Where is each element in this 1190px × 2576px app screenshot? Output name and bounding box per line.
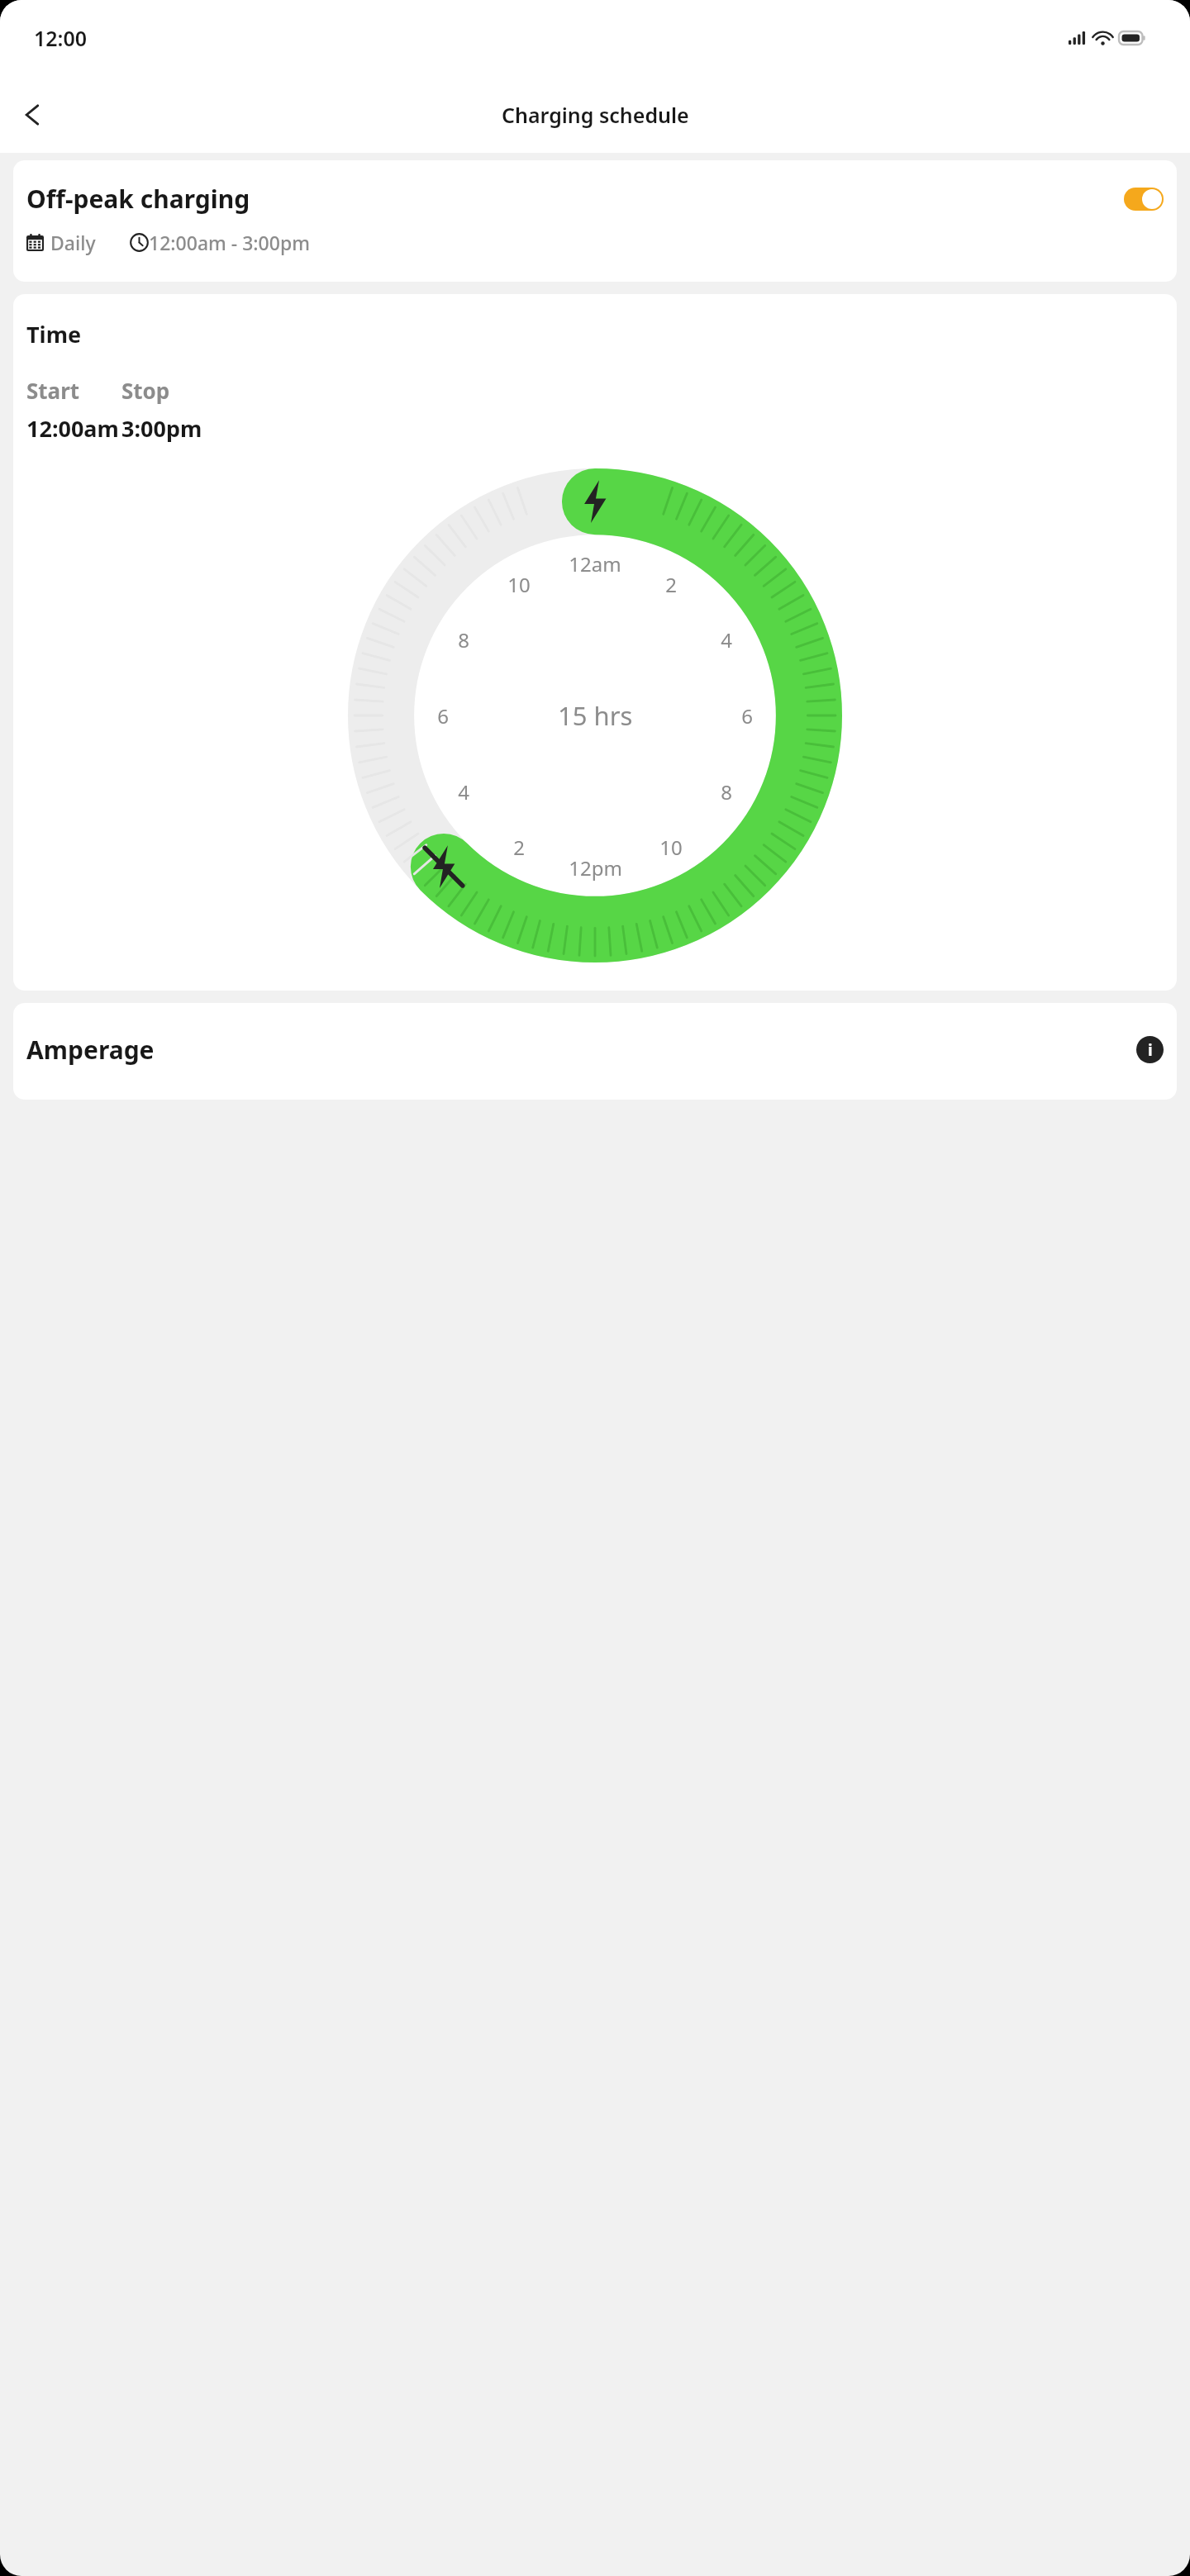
staticText: Time — [26, 319, 82, 349]
staticText: 6 — [437, 702, 449, 730]
staticText: 10 — [659, 834, 683, 861]
staticText: Stop — [121, 376, 170, 405]
button[interactable]: Charging time range dial — [348, 468, 842, 962]
staticText: 2 — [665, 571, 677, 598]
staticText: 8 — [458, 626, 469, 654]
staticText: 12:00am — [26, 413, 119, 444]
button[interactable]: Info — [1136, 1036, 1164, 1063]
staticText: 6 — [741, 702, 753, 730]
staticText: 10 — [507, 571, 531, 598]
staticText: 15 hrs — [558, 698, 633, 733]
staticText: 12pm — [569, 854, 622, 882]
button[interactable]: Back — [7, 88, 59, 141]
staticText: 3:00pm — [121, 413, 202, 444]
staticText: 2 — [513, 834, 525, 861]
staticText: Daily — [50, 230, 96, 255]
staticText: Off-peak charging — [26, 182, 1124, 216]
button[interactable]: Off-peak charging toggle, on — [1124, 188, 1164, 211]
staticText: 4 — [458, 778, 469, 806]
staticText: Start — [26, 376, 80, 405]
staticText: 12am — [569, 550, 621, 577]
staticText: i — [1148, 1039, 1153, 1061]
staticText: 12:00 — [34, 24, 88, 52]
staticText: 4 — [721, 626, 732, 654]
staticText: 12:00am - 3:00pm — [149, 230, 310, 255]
staticText: Charging schedule — [502, 101, 689, 129]
staticText: 8 — [721, 778, 732, 806]
staticText: Amperage — [26, 1033, 1136, 1067]
